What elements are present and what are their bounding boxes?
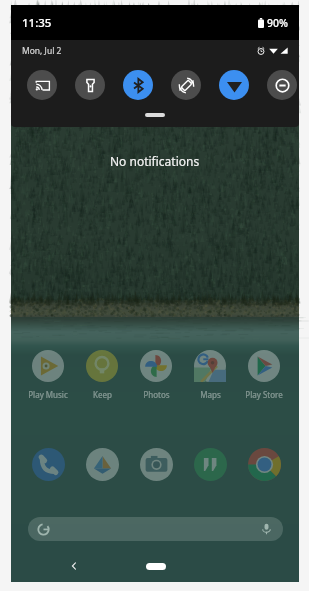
staticText: Maps	[200, 389, 221, 400]
staticText: 90%	[267, 16, 288, 30]
button[interactable]: Bluetooth	[123, 70, 153, 100]
button[interactable]: Play Store	[237, 350, 291, 400]
staticText: Keep	[93, 389, 112, 400]
button[interactable]: Phone	[21, 444, 75, 484]
button[interactable]: Flashlight	[75, 70, 105, 100]
staticText: Play Store	[245, 389, 283, 400]
staticText: Photos	[143, 389, 170, 400]
button[interactable]: Camera	[129, 444, 183, 484]
button[interactable]: Back	[63, 555, 85, 577]
button[interactable]: Chrome	[237, 444, 291, 484]
button[interactable]: Keep	[75, 350, 129, 400]
button[interactable]: Hangouts	[183, 444, 237, 484]
button[interactable]: Collapse quick settings	[145, 113, 165, 117]
staticText: Mon, Jul 2	[22, 45, 62, 57]
button[interactable]: Maps	[183, 350, 237, 400]
button[interactable]: Cast	[27, 70, 57, 100]
staticText: 11:35	[22, 15, 52, 31]
button[interactable]: Search	[28, 517, 283, 541]
button[interactable]: Home	[140, 555, 172, 577]
staticText: Play Music	[28, 389, 68, 400]
button[interactable]: Auto rotate	[171, 70, 201, 100]
button[interactable]: Photos	[129, 350, 183, 400]
button[interactable]: Wi-Fi	[219, 70, 249, 100]
button[interactable]: Play Music	[21, 350, 75, 400]
button[interactable]: Drive	[75, 444, 129, 484]
button[interactable]: Do not disturb	[267, 70, 297, 100]
staticText: No notifications	[110, 153, 200, 169]
